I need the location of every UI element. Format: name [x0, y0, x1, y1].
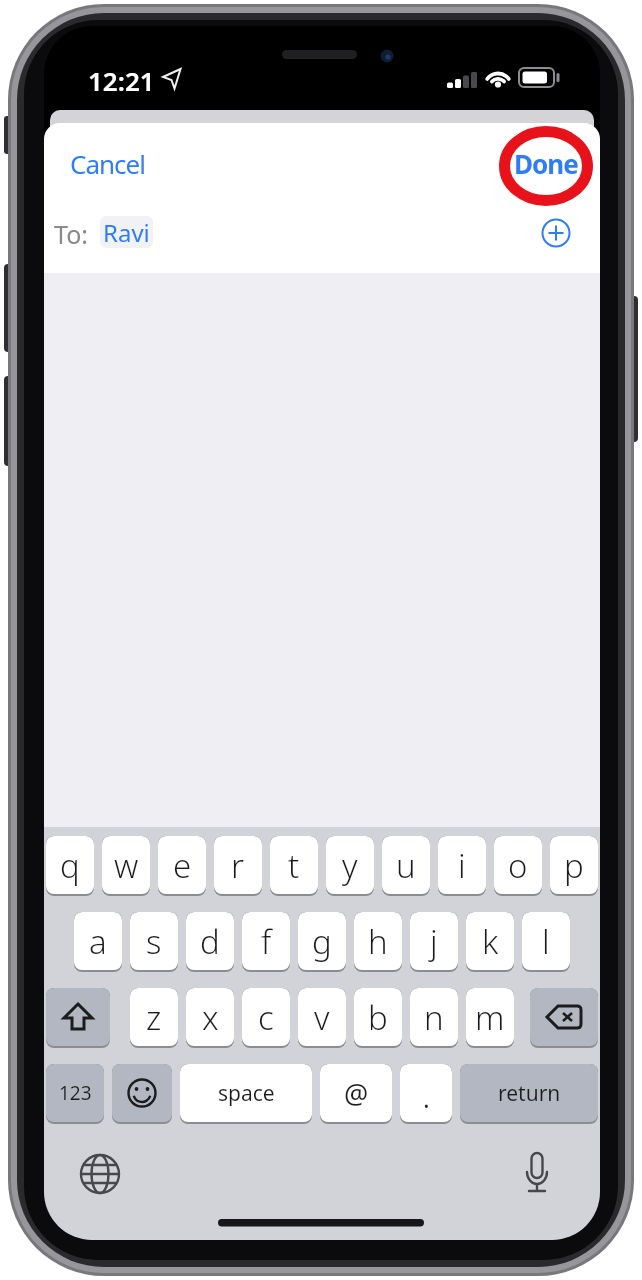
staticText: s [146, 919, 162, 964]
staticText: 12:21 [88, 63, 155, 93]
staticText: Cancel [70, 146, 145, 178]
button[interactable]: k [466, 912, 514, 972]
staticText: 123 [59, 1080, 92, 1106]
button[interactable]: b [354, 988, 402, 1048]
button[interactable]: @ [320, 1064, 392, 1124]
staticText: b [368, 995, 388, 1040]
button[interactable]: r [214, 836, 262, 896]
button[interactable]: i [438, 836, 486, 896]
staticText: Done [514, 146, 578, 178]
button[interactable]: m [466, 988, 514, 1048]
staticText: a [89, 919, 107, 964]
staticText: m [475, 995, 505, 1040]
staticText: i [458, 843, 466, 888]
button[interactable]: u [382, 836, 430, 896]
button[interactable] [46, 988, 110, 1048]
staticText: return [498, 1079, 561, 1108]
button[interactable] [538, 215, 574, 251]
button[interactable]: j [410, 912, 458, 972]
staticText: Ravi [103, 216, 150, 248]
staticText: To: [54, 217, 88, 247]
staticText: x [202, 995, 219, 1040]
button[interactable]: h [354, 912, 402, 972]
button[interactable]: o [494, 836, 542, 896]
button[interactable]: n [410, 988, 458, 1048]
button[interactable]: Done [500, 146, 592, 178]
staticText: o [508, 843, 528, 888]
staticText: j [430, 919, 438, 964]
button[interactable]: z [130, 988, 178, 1048]
button[interactable]: v [298, 988, 346, 1048]
staticText: n [424, 995, 444, 1040]
button[interactable]: t [270, 836, 318, 896]
staticText: e [173, 843, 192, 888]
button[interactable]: g [298, 912, 346, 972]
staticText: w [114, 843, 139, 888]
staticText: . [423, 1081, 430, 1115]
staticText: u [396, 843, 416, 888]
staticText: v [314, 995, 330, 1040]
button[interactable] [515, 1150, 559, 1194]
button[interactable] [112, 1064, 172, 1124]
staticText: y [342, 843, 358, 888]
staticText: @ [344, 1075, 369, 1112]
button[interactable]: . [400, 1064, 452, 1124]
button[interactable]: a [74, 912, 122, 972]
staticText: f [261, 919, 272, 964]
button[interactable]: return [460, 1064, 598, 1124]
staticText: c [258, 995, 274, 1040]
staticText: q [60, 843, 80, 888]
button[interactable] [530, 988, 598, 1048]
staticText: p [564, 843, 584, 888]
button[interactable]: Cancel [70, 146, 180, 178]
staticText: g [312, 919, 332, 964]
staticText: k [482, 919, 499, 964]
staticText: r [231, 843, 245, 888]
button[interactable]: c [242, 988, 290, 1048]
staticText: h [368, 919, 388, 964]
button[interactable]: 123 [46, 1064, 104, 1124]
button[interactable]: f [242, 912, 290, 972]
staticText: space [218, 1079, 275, 1108]
button[interactable]: q [46, 836, 94, 896]
staticText: z [146, 995, 162, 1040]
button[interactable]: x [186, 988, 234, 1048]
staticText: l [542, 919, 550, 964]
button[interactable]: d [186, 912, 234, 972]
button[interactable]: s [130, 912, 178, 972]
button[interactable]: y [326, 836, 374, 896]
button[interactable]: e [158, 836, 206, 896]
button[interactable]: p [550, 836, 598, 896]
button[interactable]: l [522, 912, 570, 972]
staticText: d [200, 919, 220, 964]
button[interactable]: space [180, 1064, 312, 1124]
staticText: t [288, 843, 300, 888]
button[interactable]: w [102, 836, 150, 896]
button[interactable] [78, 1152, 122, 1196]
button[interactable]: Ravi [100, 216, 153, 248]
